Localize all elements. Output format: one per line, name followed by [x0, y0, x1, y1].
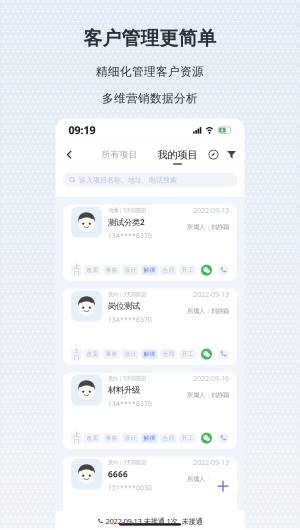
button[interactable]: 微信 [201, 265, 212, 276]
button[interactable]: 沟通｜3天前跟进 [63, 205, 237, 281]
staticText: 改卖 [86, 350, 98, 358]
staticText: 事务 [105, 350, 117, 358]
staticText: 事务 [105, 434, 117, 442]
staticText: 134****6370 [108, 315, 152, 324]
button[interactable]: 意向｜3天前跟进 [63, 457, 237, 530]
button[interactable]: 微信 [201, 433, 212, 444]
staticText: 上门 [73, 347, 79, 361]
staticText: 我的项目 [157, 149, 197, 161]
staticText: 2022-09-13 [193, 289, 229, 299]
button[interactable]: 意向｜3天前跟进 [63, 289, 237, 365]
staticText: 合同 [162, 350, 174, 358]
button[interactable]: 返回 [61, 142, 77, 168]
staticText: 设计 [124, 266, 136, 274]
button[interactable]: 筛选 [224, 142, 238, 168]
staticText: 开工 [181, 434, 193, 442]
staticText: 设计 [124, 350, 136, 358]
button[interactable]: 微信 [201, 517, 212, 528]
staticText: 2022-09-16 [193, 373, 229, 383]
staticText: 151****0030 [108, 483, 152, 492]
staticText: 解绑 [143, 434, 155, 442]
button[interactable]: 意向｜3天前跟进 [63, 373, 237, 449]
staticText: 上门 [73, 431, 79, 445]
staticText: 6666 [108, 468, 128, 480]
button[interactable]: 我的项目 [157, 142, 197, 168]
staticText: 开工 [181, 266, 193, 274]
staticText: 解绑 [143, 266, 155, 274]
button[interactable]: 拨打电话 [218, 265, 229, 276]
staticText: 意向｜3天前跟进 [108, 458, 146, 466]
staticText: 事务 [105, 266, 117, 274]
staticText: 合同 [162, 434, 174, 442]
staticText: 所属人：刘静颖 [187, 475, 229, 483]
staticText: 测试分类2 [108, 216, 145, 228]
staticText: 2022-09-13 [193, 205, 229, 215]
button[interactable]: 所有项目 [101, 142, 137, 168]
staticText: 多维营销数据分析 [102, 91, 198, 106]
staticText: 09:19 [68, 123, 95, 137]
staticText: 材料升级 [108, 385, 140, 395]
button[interactable]: 新建客户 [207, 471, 238, 502]
staticText: 合同 [162, 266, 174, 274]
staticText: 所属人：刘静颖 [187, 307, 229, 315]
staticText: 沟通｜3天前跟进 [108, 206, 146, 214]
staticText: 所有项目 [101, 149, 137, 160]
staticText: 设计 [124, 434, 136, 442]
button[interactable]: 扫一扫 [206, 142, 220, 168]
button[interactable]: 拨打电话 [218, 349, 229, 360]
staticText: 所属人：刘静颖 [187, 223, 229, 231]
staticText: 解绑 [143, 518, 155, 526]
staticText: 解绑 [143, 350, 155, 358]
staticText: 意向｜3天前跟进 [108, 290, 146, 298]
staticText: 客户管理更简单 [83, 27, 216, 50]
staticText: 事务 [105, 518, 117, 526]
staticText: 岗位测试 [108, 301, 140, 311]
staticText: 合同 [162, 518, 174, 526]
staticText: 开工 [181, 518, 193, 526]
staticText: 设计 [124, 518, 136, 526]
staticText: 上门 [73, 263, 79, 277]
staticText: 改卖 [86, 266, 98, 274]
staticText: 2022-09-13 [193, 457, 229, 467]
staticText: 精细化管理客户资源 [96, 64, 204, 79]
staticText: 所属人：刘静颖 [187, 391, 229, 399]
staticText: 134****6370 [108, 399, 152, 408]
button[interactable]: 拨打电话 [218, 433, 229, 444]
staticText: 134****6370 [108, 231, 152, 240]
staticText: 输入项目名称、地址、电话搜索 [79, 176, 177, 185]
staticText: 开工 [181, 350, 193, 358]
button[interactable]: 微信 [201, 349, 212, 360]
staticText: 2022-09-13 未接通 1次, 未接通 [105, 516, 202, 526]
staticText: 改卖 [86, 434, 98, 442]
staticText: 意向｜3天前跟进 [108, 374, 146, 382]
button[interactable]: 输入项目名称、地址、电话搜索 [55, 168, 244, 197]
